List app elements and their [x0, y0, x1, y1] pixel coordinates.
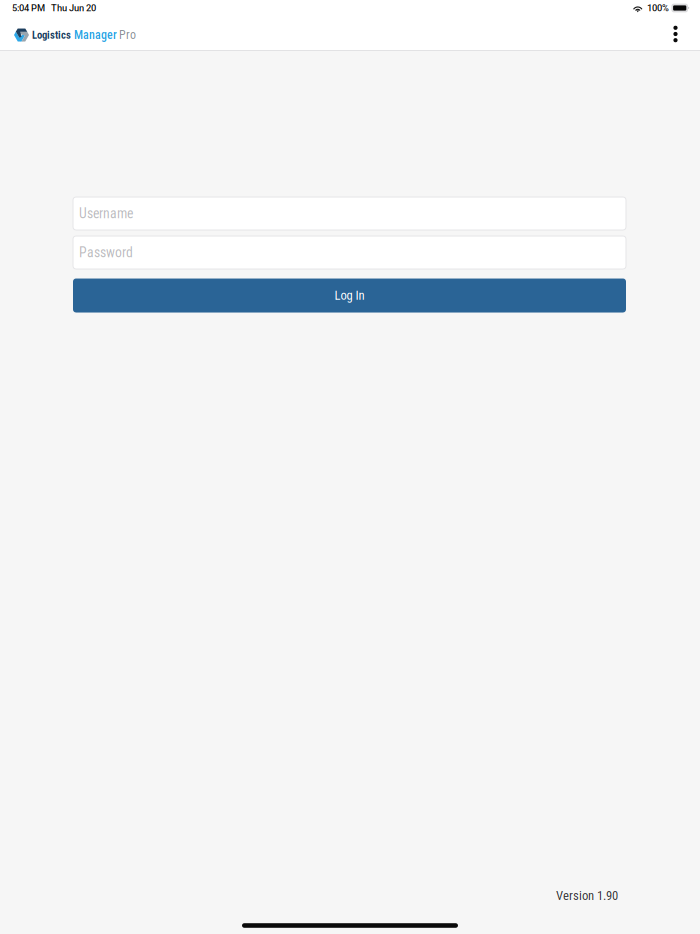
staticText: Version 1.90 — [556, 888, 618, 903]
button[interactable]: Log In — [73, 278, 626, 312]
staticText: Manager — [74, 28, 117, 42]
staticText: 5:04 PM — [12, 2, 45, 13]
staticText: Username — [79, 205, 133, 222]
staticText: Thu Jun 20 — [51, 2, 96, 13]
staticText: Pro — [119, 28, 136, 42]
button[interactable]: More options — [662, 20, 689, 50]
staticText: 100% — [647, 2, 669, 13]
staticText: Logistics — [32, 29, 71, 41]
staticText: Password — [79, 244, 133, 261]
button[interactable]: Password — [73, 236, 626, 269]
button[interactable]: Username — [73, 197, 626, 230]
staticText: Log In — [334, 288, 364, 303]
